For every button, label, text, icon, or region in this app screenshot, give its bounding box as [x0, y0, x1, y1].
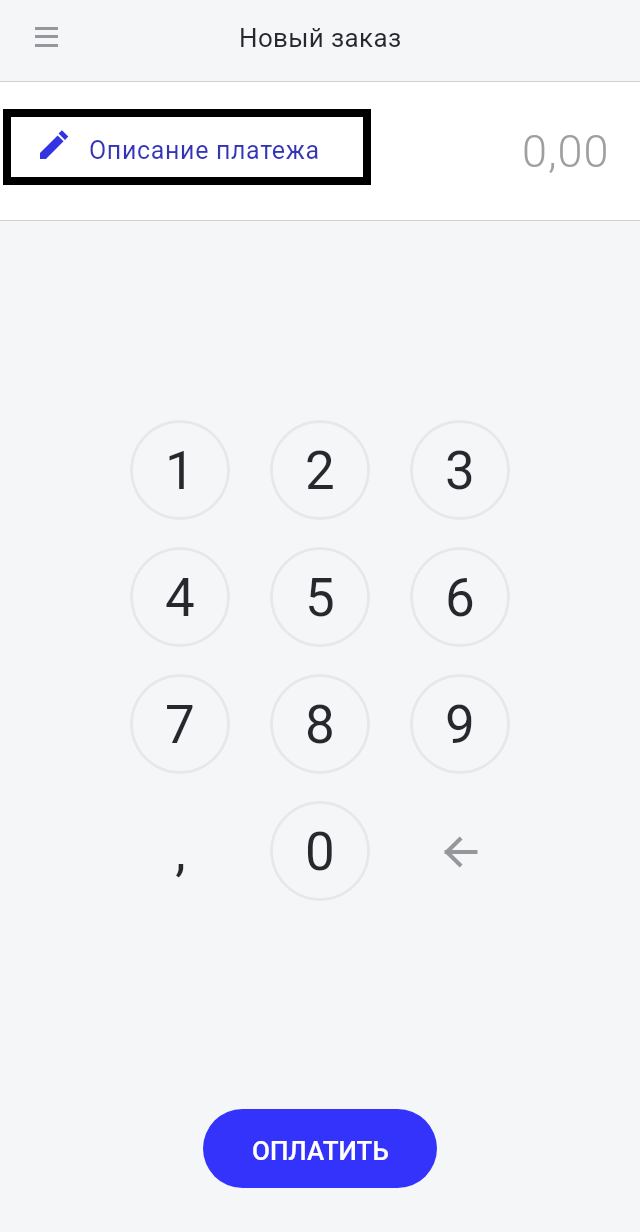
button[interactable]: ОПЛАТИТЬ — [203, 1109, 437, 1188]
staticText: 8 — [305, 694, 335, 756]
button[interactable]: 1 — [130, 420, 230, 520]
staticText: Новый заказ — [239, 23, 402, 53]
button[interactable]: 4 — [130, 547, 230, 647]
staticText: 0,00 — [522, 125, 610, 178]
button[interactable]: 6 — [410, 547, 510, 647]
button[interactable]: 5 — [270, 547, 370, 647]
staticText: ОПЛАТИТЬ — [252, 1136, 389, 1166]
button[interactable]: 3 — [410, 420, 510, 520]
button[interactable]: Menu — [18, 9, 74, 65]
staticText: 1 — [165, 440, 195, 502]
button[interactable]: 9 — [410, 674, 510, 774]
button[interactable]: Описание платежа — [11, 117, 363, 177]
button[interactable]: Backspace — [410, 801, 510, 901]
staticText: 0 — [305, 821, 335, 883]
staticText: 7 — [165, 694, 195, 756]
staticText: 2 — [305, 440, 335, 502]
button[interactable]: 8 — [270, 674, 370, 774]
button[interactable]: , — [130, 801, 230, 901]
staticText: Описание платежа — [89, 136, 320, 165]
button[interactable]: 0 — [270, 801, 370, 901]
staticText: 4 — [165, 567, 195, 629]
staticText: 6 — [445, 567, 475, 629]
button[interactable]: 7 — [130, 674, 230, 774]
staticText: 9 — [445, 694, 475, 756]
staticText: 3 — [445, 440, 475, 502]
button[interactable]: 2 — [270, 420, 370, 520]
staticText: , — [175, 821, 186, 883]
staticText: 5 — [305, 567, 335, 629]
